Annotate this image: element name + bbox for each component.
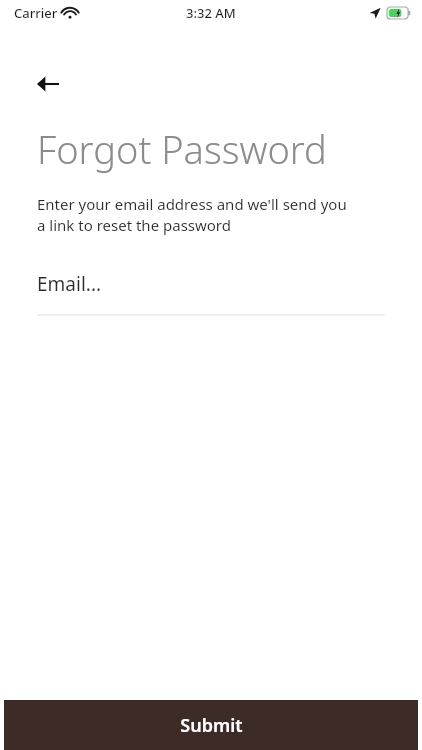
button[interactable]: Back <box>26 63 68 105</box>
staticText: Forgot Password <box>37 123 327 175</box>
staticText: Enter your email address and we'll send … <box>37 194 347 236</box>
staticText: Carrier <box>14 4 58 22</box>
staticText: Submit <box>180 713 243 738</box>
button[interactable]: Submit <box>4 700 418 750</box>
staticText: Email... <box>37 271 102 297</box>
button[interactable]: Email... <box>37 271 385 316</box>
staticText: 3:32 AM <box>186 4 236 22</box>
